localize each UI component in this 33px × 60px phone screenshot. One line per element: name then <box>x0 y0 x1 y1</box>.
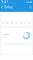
button[interactable]: Profile <box>29 6 32 9</box>
button[interactable]: Back <box>1 6 3 8</box>
staticText: Today <box>4 5 12 9</box>
staticText: 9:41 <box>1 0 8 4</box>
